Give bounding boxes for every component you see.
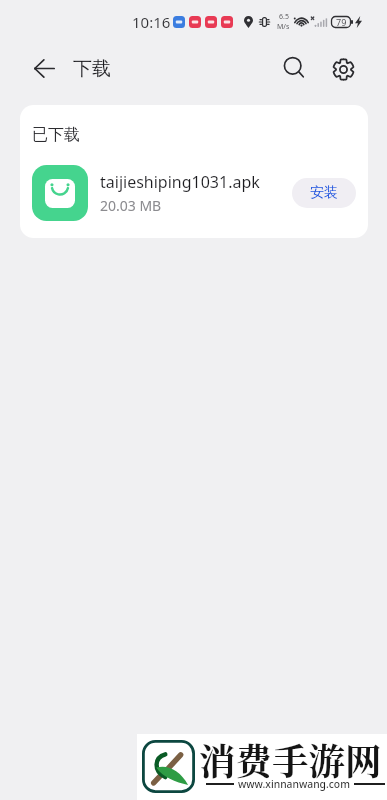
staticText: 安装 bbox=[310, 184, 338, 202]
button[interactable]: Search bbox=[272, 46, 316, 90]
staticText: 79 bbox=[336, 16, 347, 28]
staticText: 6.5 bbox=[279, 12, 289, 22]
staticText: 消费手游网 bbox=[199, 733, 382, 785]
button[interactable]: Back bbox=[22, 46, 66, 90]
staticText: M/s bbox=[277, 22, 290, 32]
staticText: taijieshiping1031.apk bbox=[100, 171, 260, 193]
button[interactable]: taijieshiping1031.apk bbox=[32, 165, 356, 221]
button[interactable]: 安装 bbox=[292, 178, 356, 208]
staticText: 已下载 bbox=[32, 125, 80, 145]
staticText: 下载 bbox=[73, 57, 111, 81]
button[interactable]: Settings bbox=[321, 47, 365, 91]
staticText: 20.03 MB bbox=[100, 196, 162, 215]
staticText: www.xinnanwang.com bbox=[238, 777, 350, 791]
staticText: 10:16 bbox=[132, 12, 171, 32]
